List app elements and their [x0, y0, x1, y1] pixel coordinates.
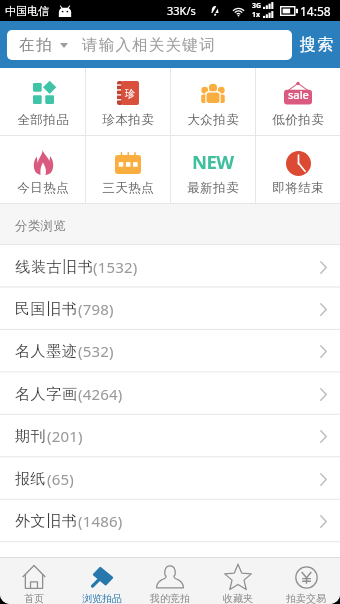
staticText: 收藏夹 [223, 592, 253, 604]
staticText: 3G [252, 1, 262, 11]
button[interactable]: 收藏夹 [204, 558, 272, 604]
staticText: (1486) [78, 511, 123, 531]
button[interactable]: 三天热点 [86, 136, 170, 203]
staticText: (532) [78, 341, 114, 361]
staticText: 名人墨迹 [15, 342, 78, 361]
staticText: 中国电信 [5, 4, 49, 18]
staticText: 请输入相关关键词 [82, 35, 216, 55]
button[interactable]: 即将结束 [256, 136, 340, 203]
button[interactable]: 拍卖交易 [272, 558, 340, 604]
staticText: sale [288, 87, 309, 102]
staticText: 大众拍卖 [187, 112, 239, 128]
button[interactable]: 珍 [86, 68, 170, 135]
staticText: 低价拍卖 [272, 112, 324, 128]
staticText: 珍 [125, 87, 135, 100]
staticText: 今日热点 [17, 180, 69, 196]
button[interactable]: 线装古旧书 [0, 246, 340, 288]
button[interactable]: 首页 [0, 558, 68, 604]
staticText: 浏览拍品 [82, 592, 122, 604]
button[interactable]: 大众拍卖 [171, 68, 255, 135]
button[interactable]: 搜索 [292, 21, 340, 68]
button[interactable]: 民国旧书 [0, 288, 340, 330]
button[interactable]: 我的竞拍 [136, 558, 204, 604]
staticText: 拍卖交易 [286, 592, 326, 604]
staticText: (4264) [78, 384, 123, 404]
staticText: 搜索 [299, 35, 334, 55]
staticText: (201) [47, 426, 83, 446]
button[interactable]: 名人字画 [0, 373, 340, 415]
staticText: (65) [47, 469, 74, 489]
staticText: 名人字画 [15, 385, 78, 404]
staticText: 线装古旧书 [15, 258, 93, 277]
button[interactable]: 名人墨迹 [0, 330, 340, 372]
staticText: 报纸 [15, 470, 47, 489]
staticText: 民国旧书 [15, 300, 78, 319]
staticText: 我的竞拍 [150, 592, 190, 604]
staticText: 首页 [24, 592, 44, 604]
button[interactable]: 今日热点 [0, 136, 85, 203]
staticText: 期刊 [15, 427, 47, 446]
button[interactable]: 在拍 [7, 30, 292, 60]
staticText: 分类浏览 [15, 218, 67, 234]
button[interactable]: 期刊 [0, 415, 340, 457]
staticText: 即将结束 [272, 180, 324, 196]
staticText: 最新拍卖 [187, 180, 239, 196]
staticText: 在拍 [19, 35, 54, 55]
button[interactable]: 浏览拍品 [68, 558, 136, 604]
staticText: 珍本拍卖 [102, 112, 154, 128]
button[interactable]: 全部拍品 [0, 68, 85, 135]
staticText: 14:58 [300, 3, 331, 19]
staticText: (1532) [93, 257, 138, 277]
staticText: 三天热点 [102, 180, 154, 196]
button[interactable]: NEW [171, 136, 255, 203]
button[interactable]: 外文旧书 [0, 500, 340, 542]
staticText: NEW [192, 149, 234, 174]
staticText: 外文旧书 [15, 512, 78, 531]
staticText: 全部拍品 [17, 112, 69, 128]
staticText: 33K/s [167, 3, 196, 18]
staticText: 1x [252, 10, 261, 20]
button[interactable]: sale [256, 68, 340, 135]
button[interactable]: 报纸 [0, 458, 340, 500]
staticText: (798) [78, 299, 114, 319]
